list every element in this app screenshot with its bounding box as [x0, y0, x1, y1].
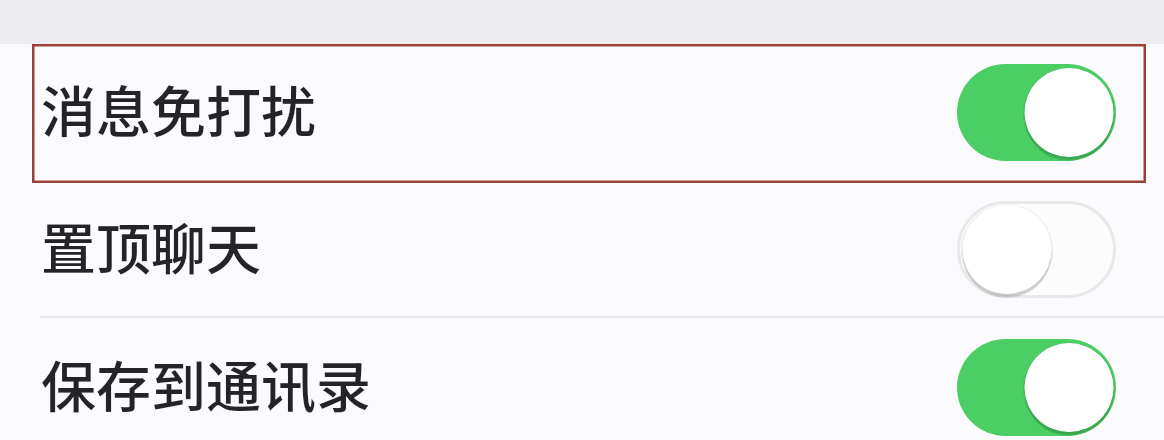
button[interactable]: 置顶聊天: [0, 181, 1164, 317]
staticText: 保存到通讯录: [41, 343, 372, 423]
button[interactable]: 保存到通讯录, on: [957, 339, 1116, 436]
button[interactable]: 置顶聊天, off: [957, 201, 1116, 298]
button[interactable]: 消息免打扰: [0, 44, 1164, 180]
staticText: 置顶聊天: [41, 205, 262, 285]
staticText: 消息免打扰: [41, 68, 317, 148]
button[interactable]: 消息免打扰, on: [957, 64, 1116, 161]
button[interactable]: 保存到通讯录: [0, 319, 1164, 440]
